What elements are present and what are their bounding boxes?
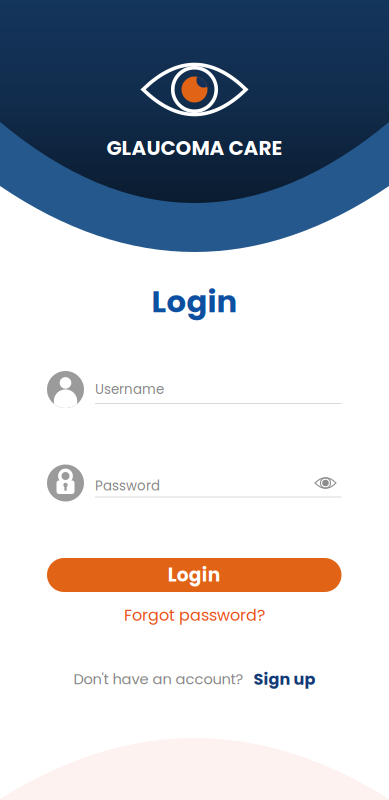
button[interactable]: Show password [311,471,339,495]
staticText: Password [95,476,160,495]
staticText: Forgot password? [124,604,265,626]
staticText: Don't have an account? [73,669,243,689]
staticText: Sign up [253,668,315,690]
staticText: Login [151,280,237,323]
button[interactable]: Sign up [253,668,315,690]
button[interactable]: Login [47,558,341,592]
staticText: GLAUCOMA CARE [106,134,282,162]
staticText: Username [95,380,164,399]
button[interactable]: Forgot password? [0,604,389,626]
staticText: Login [168,562,221,588]
